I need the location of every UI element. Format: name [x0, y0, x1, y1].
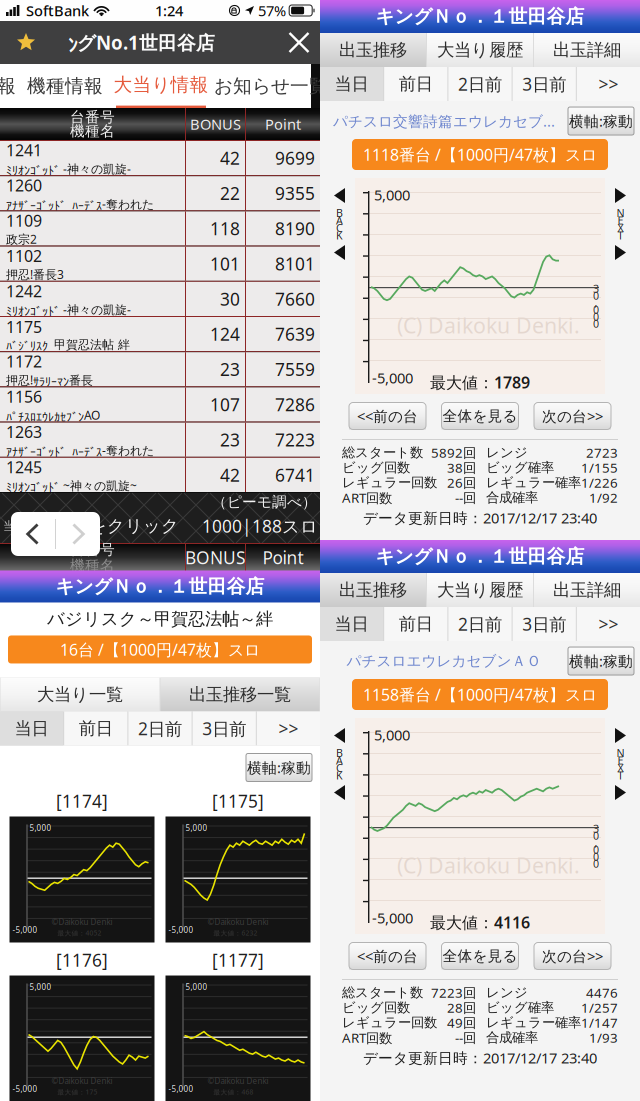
staticText: 横軸:稼動 — [569, 651, 633, 671]
staticText: 49回 — [447, 1014, 476, 1031]
button[interactable]: 横軸:稼動 — [568, 107, 634, 135]
staticText: 1102 — [6, 245, 42, 266]
button[interactable]: 2日前 — [128, 711, 192, 745]
button[interactable]: 1260 — [0, 175, 320, 210]
staticText: >> — [598, 612, 618, 635]
button[interactable]: 3日前 — [193, 711, 256, 745]
button[interactable]: 前日 — [384, 607, 447, 641]
staticText: レンジ — [486, 984, 528, 1001]
staticText: 23 — [220, 428, 240, 451]
button[interactable]: 大当り履歴 — [427, 33, 533, 67]
staticText: 42 — [220, 463, 240, 486]
button[interactable]: 1102 — [0, 246, 320, 281]
staticText: 合成確率 — [486, 1029, 538, 1046]
staticText: [1174] — [56, 789, 108, 812]
button[interactable]: 2日前 — [448, 607, 512, 641]
staticText: 9355 — [275, 182, 315, 205]
staticText: 118 — [210, 217, 240, 240]
staticText: 5,000 — [29, 822, 51, 833]
staticText: 38回 — [447, 459, 476, 476]
button[interactable]: 当日 — [0, 711, 63, 745]
button[interactable]: 2日前 — [448, 67, 512, 101]
staticText: C — [336, 221, 343, 235]
button[interactable]: 1109 — [0, 210, 320, 246]
staticText: ビッグ回数 — [342, 459, 410, 476]
button[interactable]: 1172 — [0, 351, 320, 386]
staticText: Point — [265, 114, 301, 134]
button[interactable]: 1118番台 /【1000円/47枚】スロ — [352, 139, 608, 170]
staticText: 57% — [258, 1, 286, 20]
staticText: A — [336, 213, 343, 227]
button[interactable]: 出玉推移一覧 — [160, 677, 319, 711]
staticText: 1245 — [6, 456, 42, 477]
button[interactable]: 1245 — [0, 457, 320, 492]
button[interactable]: >> — [577, 607, 640, 641]
button[interactable]: Close — [278, 21, 320, 64]
button[interactable]: 出玉詳細 — [534, 33, 640, 67]
staticText: ﾐﾘｵﾝｺﾞｯﾄﾞ ~神々の凱旋~ — [6, 478, 137, 493]
button[interactable]: 16台 /【1000円/47枚】スロ — [8, 635, 312, 663]
staticText: 0 — [593, 842, 599, 857]
staticText: 台番号 — [70, 540, 115, 558]
button[interactable]: 1242 — [0, 281, 320, 316]
staticText: -5,000 — [12, 924, 37, 935]
staticText: N — [616, 746, 624, 760]
button[interactable]: 横軸:稼動 — [568, 647, 634, 675]
staticText: ビッグ確率 — [486, 459, 554, 476]
button[interactable]: 前日 — [64, 711, 127, 745]
button[interactable]: <<前の台 — [349, 402, 426, 429]
button[interactable]: 全体を見る — [441, 942, 518, 969]
staticText: 機種名をクリック — [38, 515, 179, 537]
button[interactable]: 全体を見る — [441, 402, 518, 429]
staticText: N — [616, 206, 624, 220]
staticText: ビッグ確率 — [486, 999, 554, 1016]
button[interactable]: 1156 — [0, 386, 320, 422]
staticText: 1158番台 /【1000円/47枚】スロ — [363, 684, 597, 705]
staticText: 5,000 — [185, 822, 207, 833]
button[interactable]: 大当り一覧 — [0, 677, 159, 711]
staticText: -5,000 — [372, 368, 413, 387]
button[interactable]: <<前の台 — [349, 942, 426, 969]
staticText: レギュラー回数 — [342, 1014, 437, 1031]
button[interactable]: 3日前 — [513, 67, 576, 101]
button[interactable]: Next page — [56, 512, 100, 556]
button[interactable]: 出玉推移 — [320, 573, 426, 607]
staticText: 横軸:稼動 — [569, 111, 633, 131]
button[interactable]: 1158番台 /【1000円/47枚】スロ — [352, 679, 608, 710]
button[interactable]: 当日 — [320, 67, 383, 101]
button[interactable]: 情報 — [0, 64, 21, 108]
button[interactable]: 機種情報 — [21, 64, 109, 108]
button[interactable]: Previous page — [11, 512, 55, 556]
staticText: 7223回 — [431, 984, 476, 1001]
button[interactable]: お知らせ一覧 — [213, 64, 329, 108]
staticText: 大当り情報 — [113, 73, 208, 96]
staticText: BONUS — [185, 546, 246, 569]
button[interactable]: 大当り情報 — [109, 64, 213, 108]
button[interactable]: 横軸:稼動 — [246, 753, 312, 781]
button[interactable]: 1241 — [0, 140, 320, 175]
button[interactable]: 1175 — [0, 316, 320, 351]
staticText: --回 — [455, 489, 476, 506]
button[interactable]: 次の台>> — [534, 942, 611, 969]
button[interactable]: 次の台>> — [534, 402, 611, 429]
staticText: 1242 — [6, 280, 42, 301]
staticText: レギュラー回数 — [342, 474, 437, 491]
button[interactable]: >> — [577, 67, 640, 101]
button[interactable]: 大当り履歴 — [427, 573, 533, 607]
staticText: 最大値：468 — [213, 1087, 253, 1096]
staticText: 5,000 — [374, 185, 410, 204]
button[interactable]: 3日前 — [513, 607, 576, 641]
button[interactable]: 1263 — [0, 422, 320, 457]
button[interactable]: 出玉詳細 — [534, 573, 640, 607]
button[interactable]: 出玉推移 — [320, 33, 426, 67]
staticText: E — [617, 753, 623, 767]
staticText: データ更新日時：2017/12/17 23:40 — [363, 508, 597, 527]
button[interactable]: 当日 — [320, 607, 383, 641]
staticText: (C) Daikoku Denki. — [397, 851, 580, 879]
staticText: 最大値：4052 — [57, 928, 101, 937]
staticText: 次の台>> — [542, 946, 603, 966]
button[interactable]: 前日 — [384, 67, 447, 101]
staticText: 7223 — [275, 428, 315, 451]
button[interactable]: Favourite — [0, 21, 52, 64]
button[interactable]: >> — [257, 711, 320, 745]
